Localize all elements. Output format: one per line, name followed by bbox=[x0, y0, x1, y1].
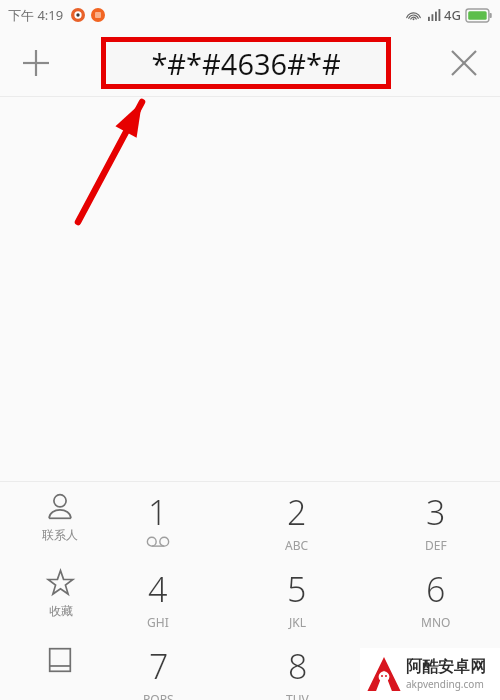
staticText: 2 bbox=[287, 489, 307, 535]
button[interactable]: Add contact bbox=[8, 35, 64, 91]
staticText: GHI bbox=[147, 614, 169, 630]
staticText: 6 bbox=[426, 566, 446, 612]
staticText: ABC bbox=[285, 537, 309, 553]
staticText: akpvending.com bbox=[406, 677, 484, 691]
staticText: 阿酷安卓网 bbox=[406, 657, 486, 677]
staticText: 下午 4:19 bbox=[8, 6, 64, 24]
button[interactable]: 9 bbox=[388, 643, 484, 700]
button[interactable]: 2 bbox=[249, 489, 345, 565]
button[interactable]: book bbox=[12, 643, 108, 700]
staticText: *#*#4636#*# bbox=[151, 44, 341, 83]
staticText: 4 bbox=[148, 566, 168, 612]
button[interactable]: 3 bbox=[388, 489, 484, 565]
button[interactable]: 1 bbox=[110, 489, 206, 565]
staticText: PQRS bbox=[143, 691, 174, 700]
staticText: TUV bbox=[286, 691, 309, 700]
button[interactable]: 6 bbox=[388, 566, 484, 642]
staticText: 1 bbox=[148, 489, 168, 535]
staticText: 收藏 bbox=[49, 603, 73, 618]
staticText: 联系人 bbox=[42, 527, 78, 542]
staticText: MNO bbox=[421, 614, 451, 630]
staticText: 3 bbox=[426, 489, 446, 535]
button[interactable]: person bbox=[12, 489, 108, 565]
staticText: 5 bbox=[287, 566, 307, 612]
button[interactable]: 4 bbox=[110, 566, 206, 642]
staticText: JKL bbox=[289, 614, 306, 630]
staticText: 4G bbox=[444, 6, 461, 24]
button[interactable]: star bbox=[12, 566, 108, 642]
staticText: DEF bbox=[425, 537, 447, 553]
staticText: 9 bbox=[426, 643, 446, 689]
button[interactable]: 5 bbox=[249, 566, 345, 642]
staticText: 8 bbox=[288, 643, 308, 689]
button[interactable]: 8 bbox=[249, 643, 345, 700]
button[interactable]: 7 bbox=[110, 643, 206, 700]
button[interactable]: *#*#4636#*# bbox=[106, 42, 386, 84]
staticText: 7 bbox=[149, 643, 169, 689]
button[interactable]: Clear bbox=[436, 35, 492, 91]
